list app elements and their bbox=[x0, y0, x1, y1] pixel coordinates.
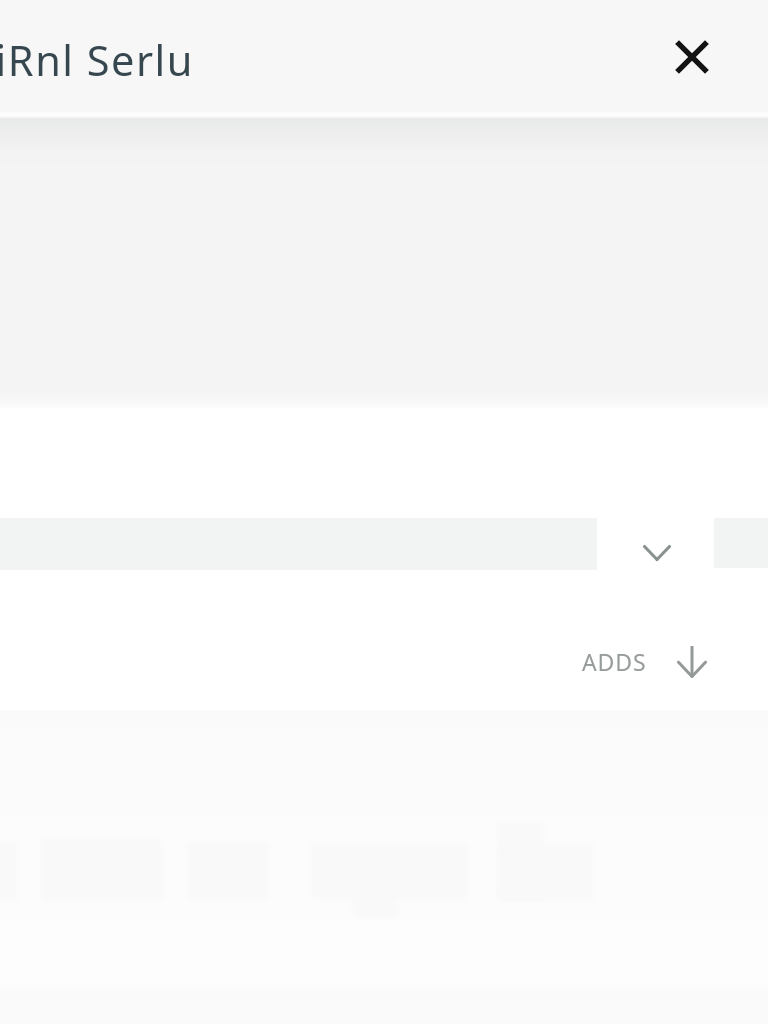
button[interactable]: Show more options bbox=[627, 518, 687, 570]
button[interactable]: Close bbox=[668, 33, 716, 81]
button[interactable]: ADDS bbox=[582, 645, 707, 678]
staticText: ADDS bbox=[582, 646, 647, 677]
staticText: oiRnl Serlu bbox=[0, 32, 194, 89]
